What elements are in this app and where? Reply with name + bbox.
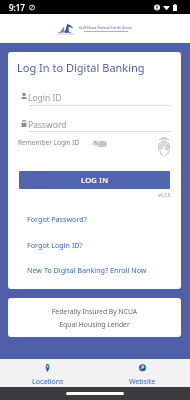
button[interactable]: Website: [95, 359, 190, 387]
staticText: Federally Insured By NCUA: [8, 307, 181, 316]
staticText: Remember Login ID: [18, 138, 80, 147]
staticText: Login ID: [28, 92, 62, 104]
staticText: Password: [28, 119, 67, 131]
staticText: Gulf Shore Federal Credit Union: [79, 25, 132, 30]
staticText: Equal Housing Lender: [8, 320, 181, 329]
button[interactable]: LOG IN: [19, 171, 170, 189]
button[interactable]: Locations: [0, 359, 95, 387]
button[interactable]: Remember Login ID toggle: [92, 138, 108, 148]
staticText: Log In to Digital Banking: [17, 60, 145, 75]
button[interactable]: Forgot Login ID?: [27, 240, 83, 250]
staticText: N: [94, 140, 98, 147]
button[interactable]: New To Digital Banking? Enroll Now: [27, 265, 147, 275]
staticText: Locations: [32, 377, 64, 387]
button[interactable]: Forgot Password?: [27, 214, 87, 224]
staticText: v4.3.0: [158, 192, 171, 198]
staticText: Website: [129, 377, 156, 387]
staticText: LOG IN: [81, 175, 109, 185]
button[interactable]: Fingerprint login: [154, 134, 174, 156]
staticText: 9:17: [9, 2, 25, 13]
